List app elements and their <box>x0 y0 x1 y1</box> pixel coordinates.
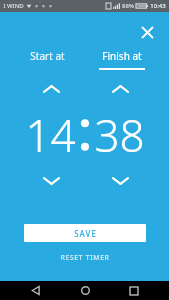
button[interactable]: Increase <box>34 79 68 99</box>
button[interactable]: Decrease <box>34 171 68 191</box>
button[interactable]: Close <box>135 20 159 44</box>
staticText: SAVE <box>74 228 97 239</box>
staticText: Finish at <box>102 49 142 63</box>
button[interactable]: Increase <box>103 79 137 99</box>
button[interactable]: Finish at <box>93 46 151 73</box>
staticText: 14 <box>25 105 76 165</box>
button[interactable]: SAVE <box>24 224 146 242</box>
staticText: Start at <box>30 49 65 63</box>
button[interactable]: Start at <box>18 46 76 71</box>
button[interactable]: Home <box>71 281 99 300</box>
staticText: I WIND <box>3 2 24 10</box>
button[interactable]: RESET TIMER <box>54 251 116 265</box>
staticText: 88% <box>122 2 134 10</box>
button[interactable]: Decrease <box>103 171 137 191</box>
button[interactable]: Recents <box>120 281 148 300</box>
staticText: 38 <box>94 105 145 165</box>
button[interactable]: Back <box>21 281 49 300</box>
staticText: RESET TIMER <box>60 253 110 263</box>
staticText: 10:43 <box>150 2 166 10</box>
